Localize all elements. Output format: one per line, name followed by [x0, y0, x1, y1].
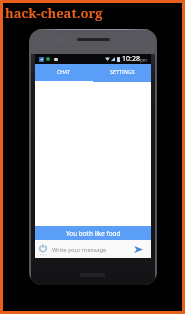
staticText: hack-cheat.org [5, 4, 103, 22]
staticText: Write your message [52, 246, 107, 254]
button[interactable]: Power [37, 242, 49, 254]
button[interactable]: CHAT [35, 64, 93, 81]
staticText: SETTINGS [110, 69, 135, 76]
staticText: pm [140, 57, 147, 63]
staticText: You both like food [66, 229, 121, 238]
staticText: 10:28 [122, 54, 140, 64]
staticText: CHAT [57, 69, 71, 76]
button[interactable]: Send [132, 243, 145, 256]
button[interactable]: SETTINGS [93, 64, 151, 81]
